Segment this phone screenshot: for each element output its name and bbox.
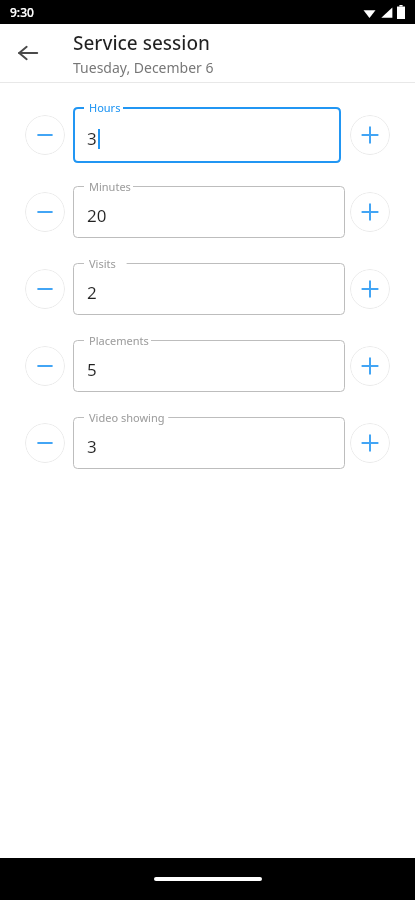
button[interactable]: Decrease Hours <box>25 115 65 155</box>
button[interactable]: Increase Visits <box>350 269 390 309</box>
staticText: Placements <box>89 333 149 348</box>
button[interactable]: Hours <box>73 107 341 163</box>
button[interactable]: Increase Hours <box>350 115 390 155</box>
staticText: Visits <box>89 256 116 271</box>
button[interactable]: Decrease Video showing <box>25 423 65 463</box>
staticText: Service session <box>73 30 210 56</box>
staticText: 9:30 <box>10 4 34 20</box>
button[interactable]: Decrease Minutes <box>25 192 65 232</box>
button[interactable]: Decrease Placements <box>25 346 65 386</box>
button[interactable]: Minutes <box>73 186 345 238</box>
button[interactable]: Increase Minutes <box>350 192 390 232</box>
staticText: Hours <box>89 100 121 115</box>
staticText: 3 <box>87 127 97 150</box>
staticText: 3 <box>87 435 97 458</box>
button[interactable]: Increase Video showing <box>350 423 390 463</box>
staticText: Tuesday, December 6 <box>73 58 214 77</box>
staticText: 2 <box>87 281 97 304</box>
button[interactable]: Placements <box>73 340 345 392</box>
staticText: 20 <box>87 204 107 227</box>
staticText: 5 <box>87 358 97 381</box>
staticText: Minutes <box>89 179 131 194</box>
staticText: Video showing <box>89 410 165 425</box>
button[interactable]: Back <box>8 33 48 73</box>
button[interactable]: Decrease Visits <box>25 269 65 309</box>
button[interactable]: Visits <box>73 263 345 315</box>
button[interactable]: Video showing <box>73 417 345 469</box>
button[interactable]: Increase Placements <box>350 346 390 386</box>
